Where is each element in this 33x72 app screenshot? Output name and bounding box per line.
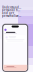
- staticText: Understand your: [2, 6, 21, 9]
- staticText: personalized advice: [2, 14, 21, 18]
- staticText: personal health: [2, 8, 21, 12]
- staticText: and get: [2, 11, 14, 15]
